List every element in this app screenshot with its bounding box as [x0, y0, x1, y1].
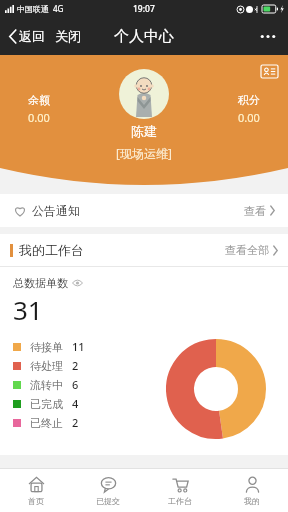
- staticText: 流转中: [30, 378, 63, 392]
- button[interactable]: Toggle visibility: [72, 279, 83, 287]
- staticText: 4G: [53, 3, 64, 14]
- staticText: 我的工作台: [19, 242, 84, 258]
- staticText: 积分: [238, 93, 260, 107]
- staticText: 公告通知: [32, 203, 80, 218]
- button[interactable]: 关闭: [53, 24, 83, 48]
- button[interactable]: 已提交: [72, 469, 144, 512]
- staticText: 已终止: [30, 416, 63, 430]
- button[interactable]: More options: [256, 24, 280, 48]
- button[interactable]: 公告通知: [0, 194, 288, 227]
- staticText: 查看: [244, 204, 266, 218]
- button[interactable]: 返回: [7, 24, 47, 48]
- staticText: 19:07: [133, 3, 155, 15]
- staticText: 已提交: [96, 496, 120, 506]
- button[interactable]: 已终止: [13, 413, 79, 432]
- staticText: 关闭: [55, 28, 81, 44]
- staticText: 查看全部: [225, 243, 269, 257]
- staticText: 11: [72, 339, 85, 354]
- staticText: 31: [13, 292, 43, 327]
- staticText: 陈建: [131, 123, 157, 139]
- button[interactable]: 流转中: [13, 375, 79, 394]
- staticText: 2: [72, 358, 79, 373]
- staticText: 待处理: [30, 359, 63, 373]
- staticText: 6: [72, 377, 79, 392]
- staticText: 2: [72, 415, 79, 430]
- staticText: 0.00: [238, 110, 260, 125]
- staticText: 首页: [28, 496, 44, 506]
- staticText: 个人中心: [114, 27, 174, 46]
- staticText: 待接单: [30, 340, 63, 354]
- button[interactable]: 待处理: [13, 356, 79, 375]
- button[interactable]: 工作台: [144, 469, 216, 512]
- staticText: 返回: [19, 28, 45, 44]
- staticText: 已完成: [30, 397, 63, 411]
- staticText: 总数据单数: [13, 276, 68, 290]
- button[interactable]: 我的: [216, 469, 288, 512]
- staticText: 4: [72, 396, 79, 411]
- button[interactable]: 积分: [238, 93, 260, 125]
- button[interactable]: My ID card: [258, 60, 280, 82]
- staticText: 中国联通: [17, 4, 49, 14]
- button[interactable]: 首页: [0, 469, 72, 512]
- staticText: [现场运维]: [116, 145, 172, 161]
- button[interactable]: 已完成: [13, 394, 79, 413]
- staticText: 工作台: [168, 496, 192, 506]
- button[interactable]: 待接单: [13, 337, 85, 356]
- button[interactable]: Profile avatar: [119, 69, 169, 119]
- staticText: 0.00: [28, 110, 50, 125]
- button[interactable]: 余额: [28, 93, 50, 125]
- staticText: 余额: [28, 93, 50, 107]
- button[interactable]: 我的工作台: [0, 234, 288, 266]
- staticText: 我的: [244, 496, 260, 506]
